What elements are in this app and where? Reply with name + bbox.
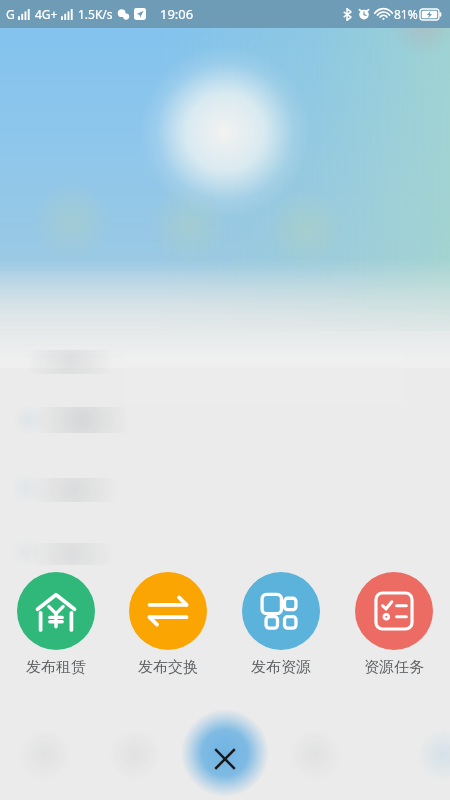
button[interactable]: 发布租赁 [0, 570, 112, 679]
staticText: 1.5K/s [78, 6, 113, 22]
staticText: 4G+ [35, 6, 58, 22]
staticText: 19:06 [160, 5, 194, 23]
button[interactable]: Close [197, 731, 253, 787]
button[interactable]: 资源任务 [337, 570, 450, 679]
staticText: 发布租赁 [26, 658, 86, 677]
staticText: 发布资源 [251, 658, 311, 677]
button[interactable]: 发布交换 [112, 570, 224, 679]
staticText: 资源任务 [364, 658, 424, 677]
button[interactable]: 发布资源 [224, 570, 337, 679]
staticText: 发布交换 [138, 658, 198, 677]
staticText: 81% [394, 6, 418, 22]
staticText: G [6, 6, 15, 22]
